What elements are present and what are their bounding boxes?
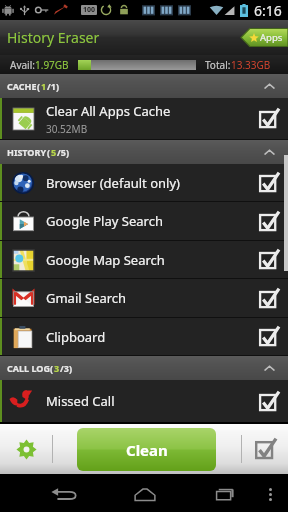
button[interactable]: Clear All Apps Cache — [0, 98, 288, 139]
staticText: CACHE — [7, 80, 37, 92]
button[interactable]: CALL LOG — [0, 356, 288, 380]
staticText: Gmail Search — [46, 289, 127, 307]
staticText: ( — [50, 362, 54, 374]
button[interactable]: Browser (default only) — [0, 164, 288, 201]
staticText: HISTORY — [7, 146, 47, 158]
staticText: Google Play Search — [46, 212, 163, 230]
button[interactable]: Toggle Google Play Search — [258, 211, 279, 232]
button[interactable]: HISTORY — [0, 140, 288, 164]
staticText: 6:16 — [254, 1, 282, 20]
staticText: ( — [47, 146, 51, 158]
staticText: Missed Call — [46, 392, 115, 410]
button[interactable]: Toggle Clipboard — [258, 326, 279, 347]
staticText: Clear All Apps Cache — [46, 102, 171, 120]
button[interactable]: Select all — [241, 424, 288, 474]
button[interactable]: Clean — [77, 428, 216, 471]
button[interactable]: Google Play Search — [0, 202, 288, 240]
button[interactable]: Toggle Missed Call — [258, 391, 279, 412]
button[interactable]: Google Map Search — [0, 241, 288, 278]
staticText: 3 — [54, 362, 60, 374]
button[interactable]: Clipboard — [0, 318, 288, 355]
button[interactable]: Toggle Google Map Search — [258, 249, 279, 270]
staticText: CALL LOG — [7, 362, 50, 374]
staticText: 100 — [83, 5, 96, 15]
button[interactable]: CACHE — [0, 74, 288, 98]
staticText: 30.52MB — [46, 122, 88, 136]
staticText: Total: — [205, 58, 231, 72]
staticText: Google Map Search — [46, 251, 165, 269]
button[interactable]: Back — [45, 479, 81, 509]
button[interactable]: Gmail Search — [0, 279, 288, 317]
button[interactable]: Toggle Gmail Search — [258, 288, 279, 309]
button[interactable]: Apps — [241, 28, 288, 47]
staticText: 13.33GB — [231, 58, 271, 72]
button[interactable]: Missed Call — [0, 380, 288, 422]
staticText: ( — [37, 80, 41, 92]
button[interactable]: More options — [260, 484, 280, 504]
button[interactable]: Settings — [0, 424, 52, 474]
button[interactable]: Toggle Browser (default only) — [258, 172, 279, 193]
staticText: Apps — [260, 31, 283, 44]
staticText: /5) — [57, 146, 69, 158]
staticText: Clipboard — [46, 328, 106, 346]
staticText: /3) — [60, 362, 72, 374]
button[interactable]: Home — [127, 479, 163, 509]
staticText: 5 — [51, 146, 57, 158]
staticText: Clean — [126, 440, 168, 460]
staticText: Browser (default only) — [46, 174, 180, 192]
button[interactable]: Toggle Clear All Apps Cache — [258, 108, 279, 129]
staticText: /1) — [47, 80, 59, 92]
button[interactable]: Recent apps — [207, 479, 243, 509]
staticText: 1.97GB — [35, 58, 69, 72]
staticText: Avail: — [10, 58, 35, 72]
staticText: History Eraser — [7, 28, 100, 47]
staticText: 1 — [41, 80, 47, 92]
